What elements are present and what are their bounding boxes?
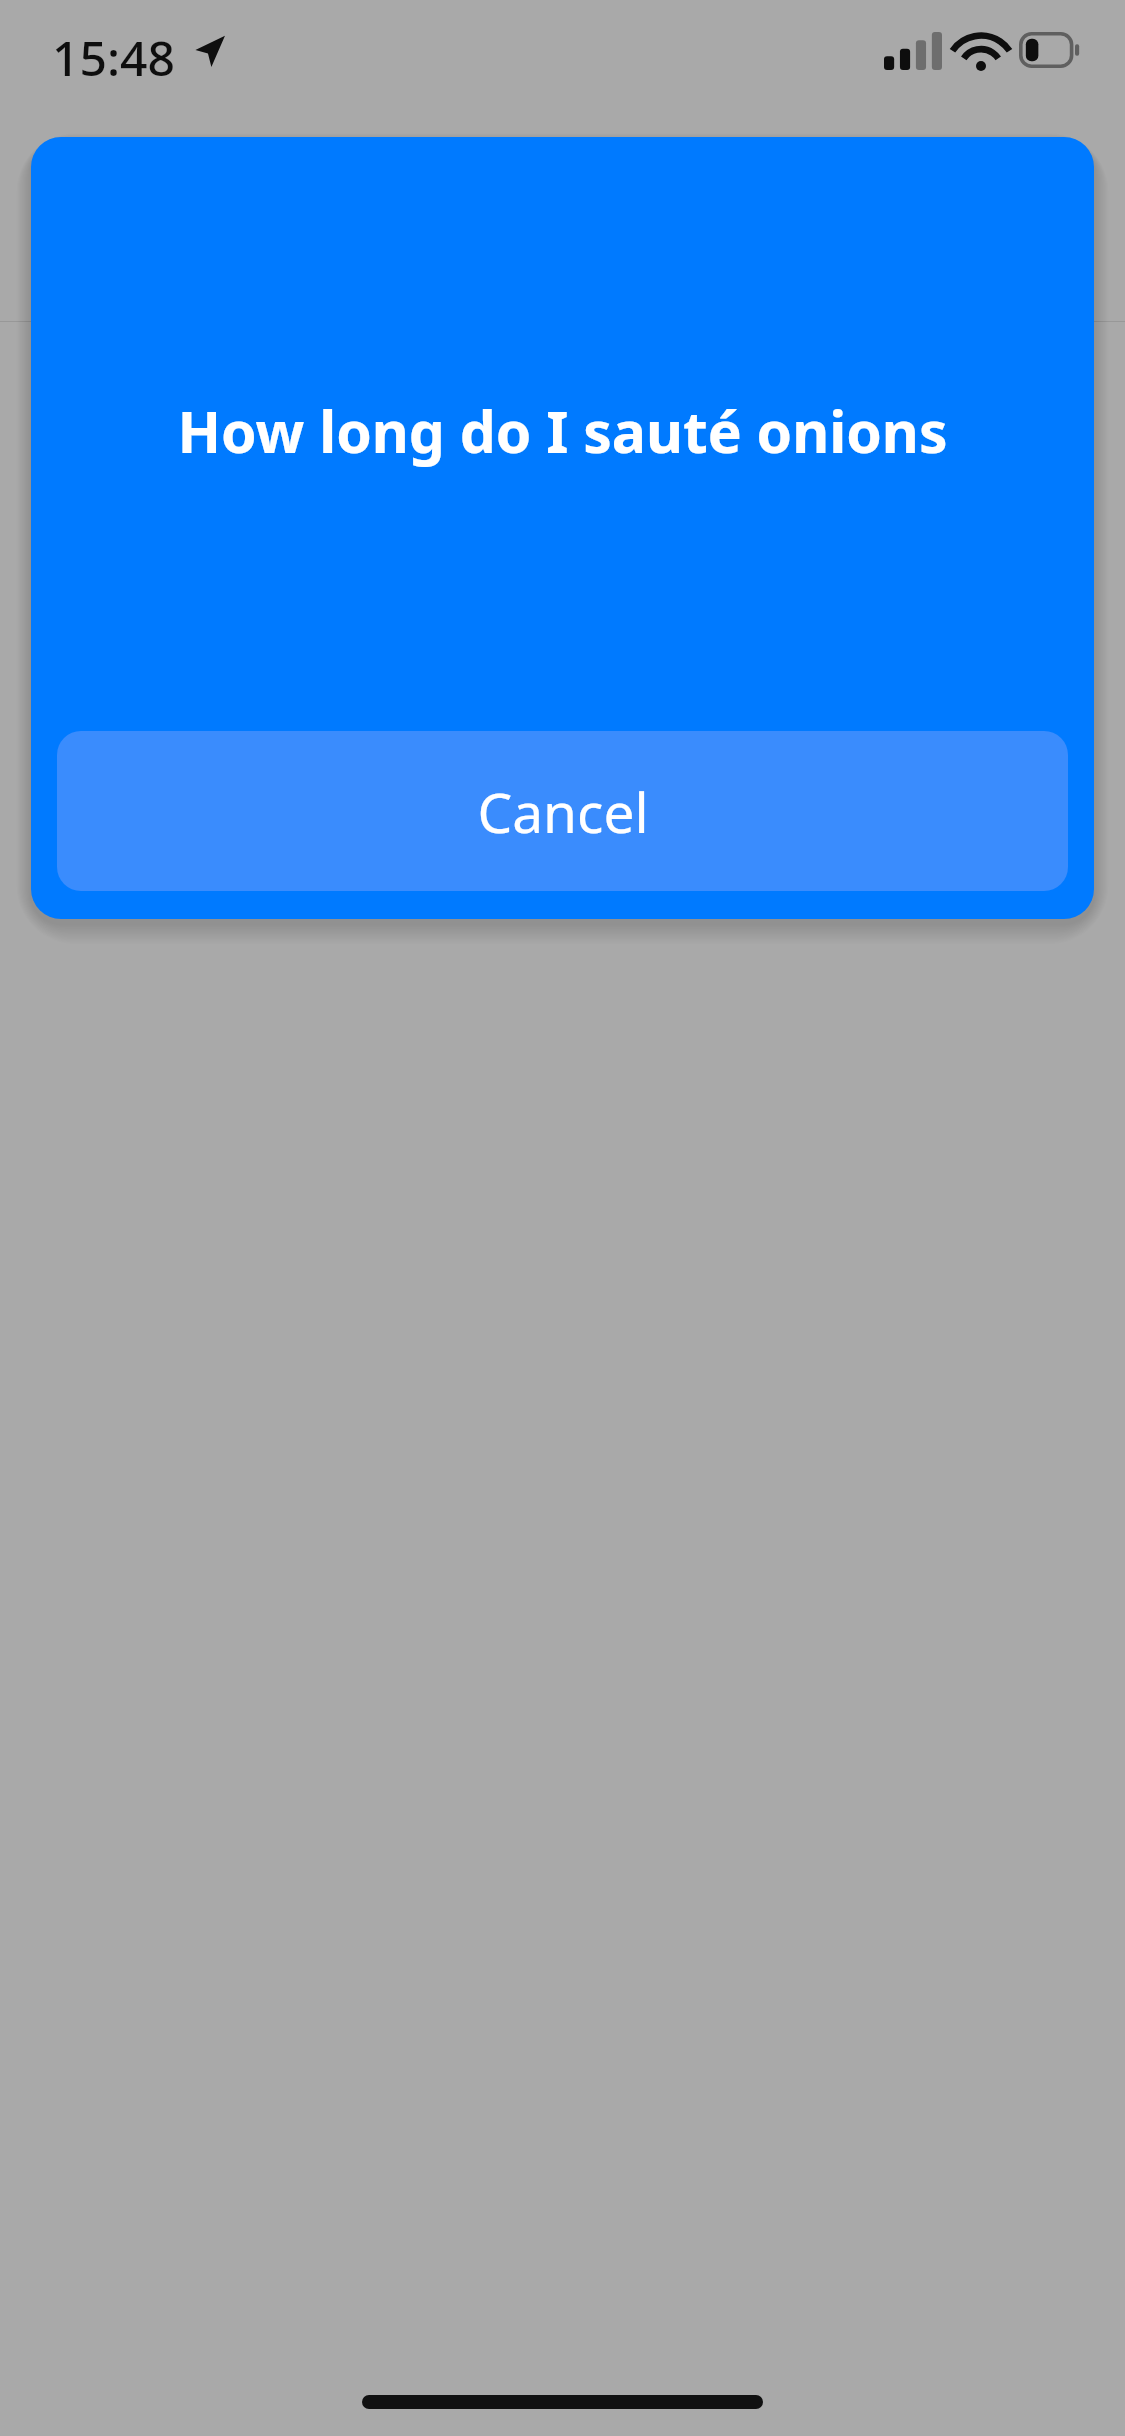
button[interactable]: Cancel	[57, 731, 1068, 891]
staticText: 15:48	[52, 25, 175, 90]
other: Location in use	[192, 34, 226, 68]
other: Cellular signal	[884, 32, 942, 70]
staticText: Cancel	[477, 774, 649, 849]
staticText: How long do I sauté onions	[65, 392, 1060, 470]
other: Battery	[1019, 32, 1083, 68]
other: Wi-Fi	[954, 30, 1008, 70]
